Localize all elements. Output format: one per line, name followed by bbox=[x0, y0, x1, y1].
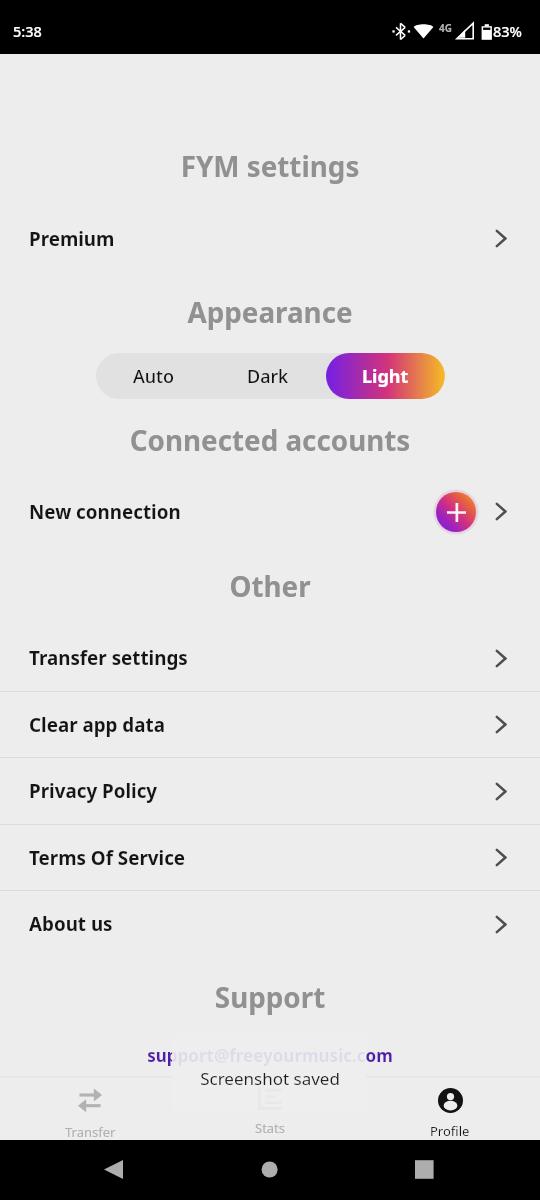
button[interactable]: About us bbox=[0, 891, 540, 957]
button[interactable]: New connection bbox=[0, 484, 540, 539]
staticText: Transfer bbox=[65, 1123, 116, 1140]
button[interactable]: support@freeyourmusic.com bbox=[0, 1044, 540, 1067]
staticText: Connected accounts bbox=[0, 421, 540, 459]
button[interactable]: Transfer settings bbox=[0, 625, 540, 691]
button[interactable]: Profile bbox=[360, 1076, 540, 1140]
staticText: Appearance bbox=[0, 293, 540, 331]
staticText: 5:38 bbox=[13, 21, 42, 41]
staticText: 4G bbox=[439, 21, 452, 35]
button[interactable]: Auto bbox=[96, 353, 210, 399]
staticText: Screenshot saved bbox=[0, 1067, 540, 1090]
staticText: New connection bbox=[29, 499, 181, 525]
staticText: About us bbox=[29, 911, 113, 937]
button[interactable]: Stats bbox=[180, 1076, 360, 1140]
button[interactable]: Transfer bbox=[0, 1076, 180, 1140]
staticText: Clear app data bbox=[29, 712, 165, 738]
button[interactable]: Privacy Policy bbox=[0, 758, 540, 824]
staticText: Premium bbox=[29, 226, 115, 252]
button[interactable]: Dark bbox=[210, 353, 326, 399]
staticText: Profile bbox=[430, 1122, 470, 1140]
staticText: Transfer settings bbox=[29, 645, 188, 671]
staticText: Auto bbox=[133, 364, 174, 389]
staticText: 83% bbox=[493, 21, 522, 41]
staticText: Other bbox=[0, 567, 540, 605]
button[interactable]: Premium bbox=[0, 210, 540, 267]
button[interactable]: Clear app data bbox=[0, 692, 540, 757]
button[interactable]: Add connection bbox=[433, 489, 479, 535]
staticText: Light bbox=[362, 364, 409, 389]
staticText: FYM settings bbox=[0, 147, 540, 185]
button[interactable]: Terms Of Service bbox=[0, 825, 540, 890]
button[interactable]: Light bbox=[326, 353, 445, 399]
staticText: Stats bbox=[255, 1119, 286, 1137]
staticText: Terms Of Service bbox=[29, 845, 186, 871]
staticText: Dark bbox=[247, 364, 289, 389]
staticText: Support bbox=[0, 978, 540, 1016]
staticText: Privacy Policy bbox=[29, 778, 158, 804]
